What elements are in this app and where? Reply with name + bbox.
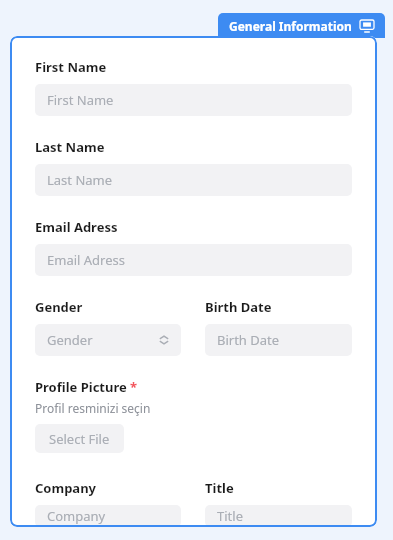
staticText: First Name [35, 58, 107, 76]
staticText: Last Name [47, 171, 340, 189]
staticText: Profile Picture * [35, 378, 138, 396]
staticText: Birth Date [217, 331, 340, 349]
button[interactable]: General Information [218, 13, 385, 38]
staticText: Gender [47, 331, 159, 349]
button[interactable]: Select File [35, 424, 124, 453]
staticText: Company [35, 479, 97, 497]
staticText: Title [205, 479, 234, 497]
button[interactable]: Company [35, 505, 181, 527]
staticText: Email Adress [35, 218, 118, 236]
button[interactable]: Email Adress [35, 244, 352, 276]
staticText: First Name [47, 91, 340, 109]
staticText: Email Adress [47, 251, 340, 269]
button[interactable]: Last Name [35, 164, 352, 196]
staticText: Profil resminizi seçin [35, 400, 151, 416]
staticText: Birth Date [205, 298, 272, 316]
button[interactable]: Gender [35, 324, 181, 356]
staticText: Gender [35, 298, 83, 316]
button[interactable]: Title [205, 505, 352, 527]
staticText: Last Name [35, 138, 105, 156]
button[interactable]: Birth Date [205, 324, 352, 356]
staticText: Select File [49, 430, 110, 448]
staticText: General Information [229, 18, 352, 34]
staticText: Company [47, 507, 169, 525]
button[interactable]: First Name [35, 84, 352, 116]
staticText: Title [217, 507, 340, 525]
